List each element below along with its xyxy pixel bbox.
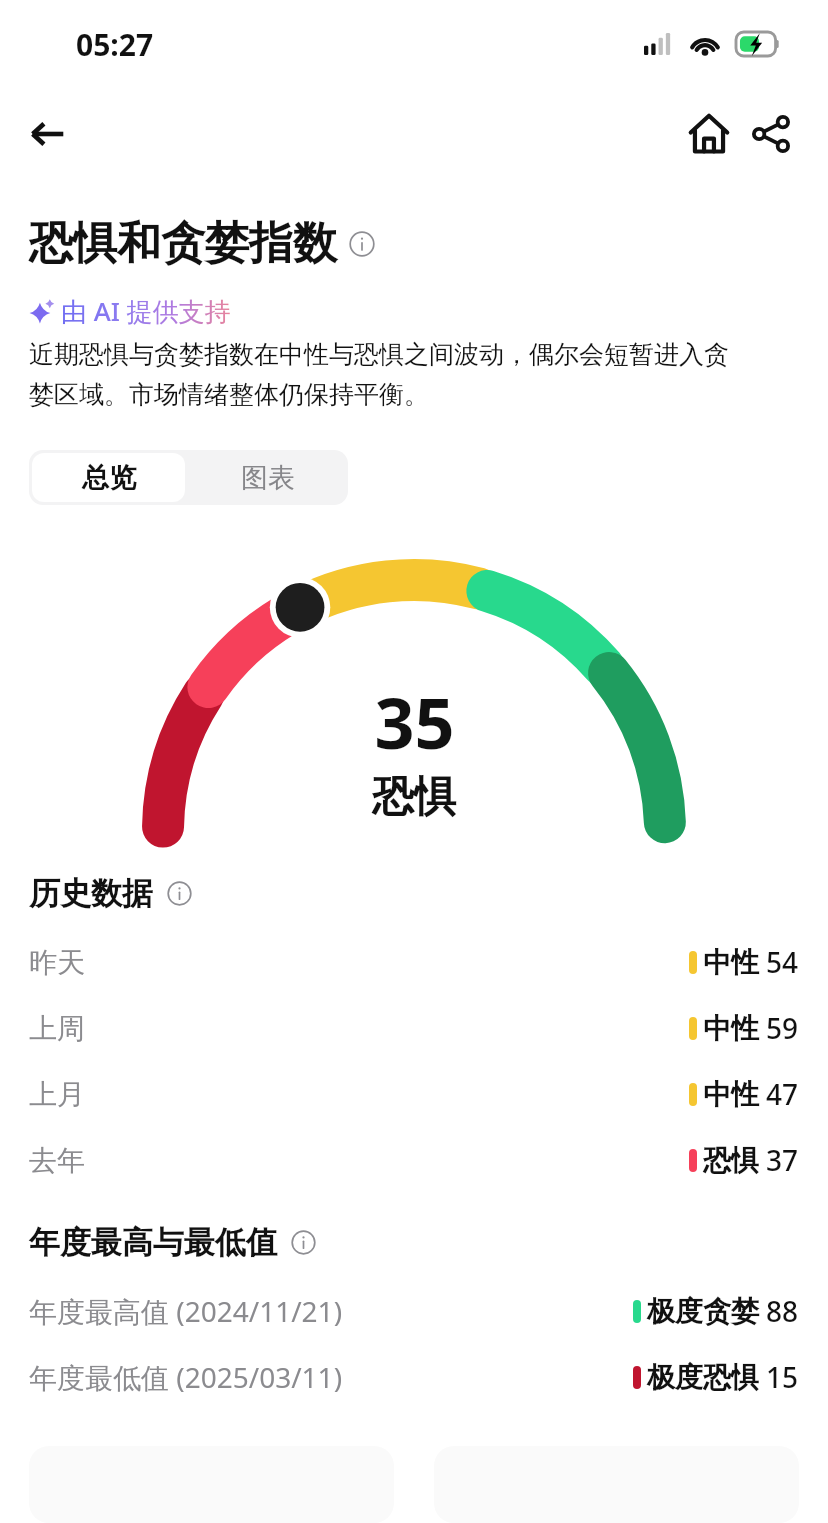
staticText: 去年	[29, 1143, 85, 1178]
staticText: 中性	[703, 945, 759, 980]
staticText: 05:27	[76, 24, 154, 65]
staticText: 恐惧	[372, 771, 456, 824]
staticText: 由 AI 提供支持	[61, 293, 231, 329]
staticText: 中性	[703, 1077, 759, 1112]
button[interactable]: Home	[678, 103, 740, 165]
staticText: 图表	[241, 461, 295, 495]
button[interactable]: 年度最高值 (2024/11/21)	[29, 1278, 799, 1344]
staticText: 37	[766, 1141, 799, 1179]
staticText: 47	[766, 1075, 799, 1113]
button[interactable]: 恐惧和贪婪指数	[29, 216, 375, 271]
staticText: 近期恐惧与贪婪指数在中性与恐惧之间波动，偶尔会短暂进入贪 婪区域。市场情绪整体仍…	[29, 339, 729, 410]
staticText: 中性	[703, 1011, 759, 1046]
staticText: 54	[766, 943, 799, 981]
button[interactable]: 昨天	[29, 929, 799, 995]
button[interactable]: 历史数据	[29, 874, 828, 913]
button[interactable]: 去年	[29, 1127, 799, 1193]
staticText: 59	[766, 1009, 799, 1047]
staticText: 年度最高与最低值	[29, 1223, 277, 1262]
button[interactable]: Back	[20, 106, 76, 162]
staticText: 恐惧和贪婪指数	[29, 216, 337, 271]
button[interactable]: 总览	[32, 453, 185, 502]
staticText: 昨天	[29, 945, 85, 980]
staticText: 年度最低值 (2025/03/11)	[29, 1358, 343, 1396]
staticText: 上月	[29, 1077, 85, 1112]
button[interactable]: 图表	[188, 450, 348, 505]
button[interactable]: 年度最低值 (2025/03/11)	[29, 1344, 799, 1410]
staticText: 恐惧	[703, 1143, 759, 1178]
staticText: 年度最高值 (2024/11/21)	[29, 1292, 343, 1330]
staticText: 极度贪婪	[647, 1294, 759, 1329]
button[interactable]: 上月	[29, 1061, 799, 1127]
staticText: 上周	[29, 1011, 85, 1046]
button[interactable]: 年度最高与最低值	[29, 1223, 828, 1262]
staticText: 15	[766, 1358, 799, 1396]
staticText: 35	[374, 674, 455, 769]
staticText: 88	[766, 1292, 799, 1330]
button[interactable]: Share	[740, 103, 802, 165]
staticText: 总览	[82, 461, 136, 495]
button[interactable]: 上周	[29, 995, 799, 1061]
staticText: 历史数据	[29, 874, 153, 913]
staticText: 极度恐惧	[647, 1360, 759, 1395]
